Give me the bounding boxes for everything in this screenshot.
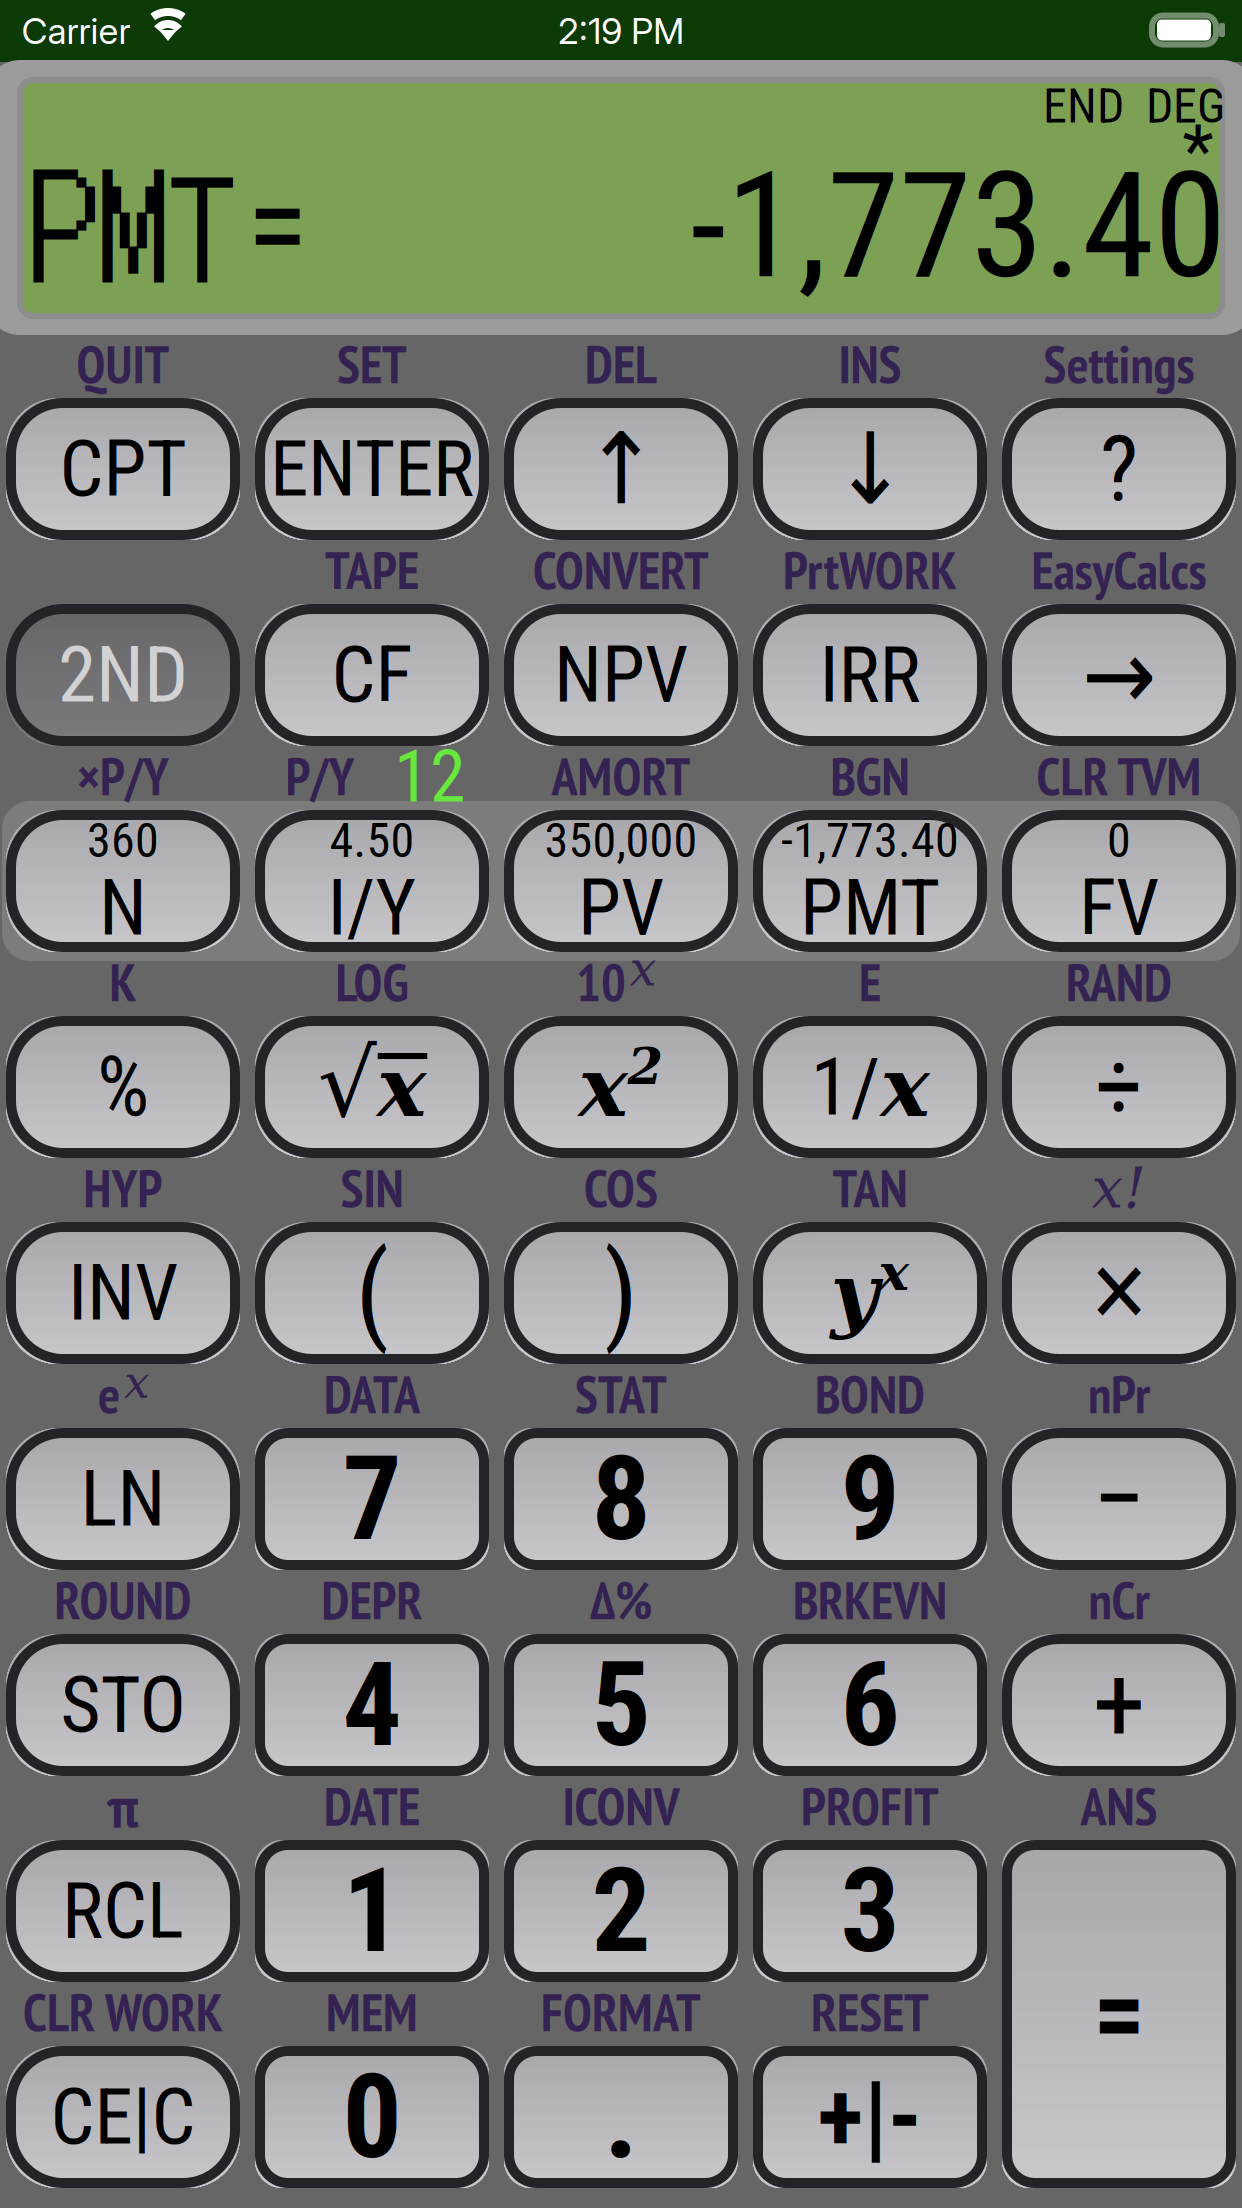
staticText: x — [578, 1038, 627, 1135]
staticText: RESET — [811, 1978, 929, 2046]
staticText: ↓ — [833, 412, 907, 526]
staticText: ANS — [1080, 1772, 1157, 1840]
staticText: BRKEVN — [793, 1566, 947, 1634]
staticText: ×P/Y — [77, 742, 169, 810]
staticText: 6 — [840, 1636, 899, 1774]
staticText: SIN — [340, 1154, 403, 1222]
button[interactable]: − — [1002, 1428, 1236, 1570]
staticText: PrtWORK — [783, 536, 957, 604]
button[interactable]: 4 — [255, 1634, 489, 1776]
button[interactable]: . — [504, 2046, 738, 2188]
button[interactable]: 8 — [504, 1428, 738, 1570]
button[interactable]: x — [504, 1016, 738, 1158]
staticText: = — [1093, 1953, 1145, 2075]
staticText: +|- — [817, 2061, 922, 2173]
staticText: x — [377, 1038, 426, 1135]
staticText: STAT — [575, 1360, 667, 1428]
staticText: E — [859, 948, 881, 1016]
button[interactable]: 4.50 — [255, 810, 489, 952]
staticText: ↑ — [584, 412, 658, 526]
button[interactable]: 1 — [255, 1840, 489, 1982]
button[interactable]: ↑ — [504, 398, 738, 540]
staticText: nPr — [1088, 1360, 1150, 1428]
button[interactable]: NPV — [504, 604, 738, 746]
button[interactable]: LN — [6, 1428, 240, 1570]
button[interactable]: 0 — [1002, 810, 1236, 952]
staticText: K — [109, 948, 136, 1016]
staticText: 4 — [342, 1636, 401, 1774]
button[interactable]: 7 — [255, 1428, 489, 1570]
staticText: SET — [337, 330, 407, 398]
button[interactable]: 0 — [255, 2046, 489, 2188]
button[interactable]: RCL — [6, 1840, 240, 1982]
button[interactable]: ÷ — [1002, 1016, 1236, 1158]
staticText: EasyCalcs — [1031, 536, 1206, 604]
staticText: PMT — [29, 118, 236, 318]
button[interactable]: 350,000 — [504, 810, 738, 952]
button[interactable]: 9 — [753, 1428, 987, 1570]
staticText: e — [98, 1360, 120, 1428]
staticText: HYP — [83, 1154, 162, 1222]
staticText: CONVERT — [533, 536, 709, 604]
staticText: QUIT — [76, 330, 169, 398]
button[interactable]: INV — [6, 1222, 240, 1364]
staticText: CLR TVM — [1036, 742, 1201, 810]
staticText: 7 — [342, 1430, 401, 1568]
staticText: ) — [604, 1230, 638, 1355]
staticText: ENTER — [270, 424, 474, 514]
button[interactable]: 2 — [504, 1840, 738, 1982]
button[interactable]: 6 — [753, 1634, 987, 1776]
staticText: INV — [68, 1248, 178, 1338]
staticText: 2:19 PM — [558, 9, 684, 53]
button[interactable]: CF — [255, 604, 489, 746]
staticText: ( — [355, 1230, 388, 1355]
staticText: DEPR — [321, 1566, 422, 1634]
staticText: 12 — [394, 735, 466, 819]
staticText: ICONV — [562, 1772, 679, 1840]
button[interactable]: 360 — [6, 810, 240, 952]
staticText: DATA — [324, 1360, 420, 1428]
button[interactable]: ENTER — [255, 398, 489, 540]
button[interactable]: +|- — [753, 2046, 987, 2188]
button[interactable]: ✕ — [1002, 1222, 1236, 1364]
button[interactable]: CE|C — [6, 2046, 240, 2188]
staticText: Δ% — [590, 1566, 652, 1634]
staticText: STO — [60, 1660, 185, 1750]
button[interactable]: √ — [255, 1016, 489, 1158]
button[interactable]: = — [1002, 1840, 1236, 2188]
button[interactable]: → — [1002, 604, 1236, 746]
button[interactable]: -1,773.40 — [753, 810, 987, 952]
staticText: . — [604, 2048, 638, 2186]
staticText: Carrier — [21, 9, 130, 53]
staticText: → — [1082, 618, 1156, 732]
staticText: 2ND — [58, 630, 188, 720]
staticText: ROUND — [54, 1566, 191, 1634]
staticText: 9 — [840, 1430, 899, 1568]
button[interactable]: 2ND — [6, 604, 240, 746]
button[interactable]: 5 — [504, 1634, 738, 1776]
button[interactable]: + — [1002, 1634, 1236, 1776]
staticText: IRR — [819, 630, 920, 720]
button[interactable]: ) — [504, 1222, 738, 1364]
button[interactable]: STO — [6, 1634, 240, 1776]
staticText: BGN — [830, 742, 909, 810]
button[interactable]: 1/ — [753, 1016, 987, 1158]
staticText: RCL — [62, 1866, 184, 1956]
button[interactable]: ( — [255, 1222, 489, 1364]
button[interactable]: y — [753, 1222, 987, 1364]
staticText: FV — [1079, 863, 1159, 953]
button[interactable]: ? — [1002, 398, 1236, 540]
staticText: nCr — [1088, 1566, 1149, 1634]
staticText: √ — [318, 1030, 377, 1138]
staticText: BOND — [815, 1360, 925, 1428]
button[interactable]: 3 — [753, 1840, 987, 1982]
staticText: ÷ — [1095, 1031, 1143, 1143]
staticText: I/Y — [327, 863, 416, 953]
staticText: PMT — [800, 863, 940, 953]
button[interactable]: IRR — [753, 604, 987, 746]
button[interactable]: % — [6, 1016, 240, 1158]
button[interactable]: ↓ — [753, 398, 987, 540]
staticText: 5 — [591, 1636, 650, 1774]
staticText: 8 — [591, 1430, 650, 1568]
button[interactable]: CPT — [6, 398, 240, 540]
